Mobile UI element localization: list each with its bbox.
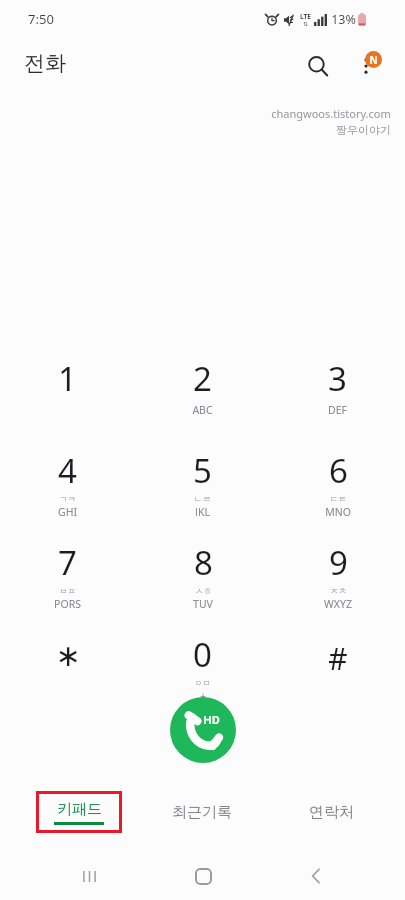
staticText: JKL — [195, 505, 210, 516]
button[interactable]: 연락처 — [286, 793, 376, 831]
staticText: ㄱㅋ — [59, 494, 76, 505]
staticText: ㄴㄹ — [194, 494, 211, 505]
staticText: 짱우이야기 — [336, 123, 391, 137]
button[interactable]: 0 — [135, 632, 270, 700]
button[interactable]: ∗ — [0, 632, 135, 700]
staticText: # — [328, 638, 348, 679]
button[interactable]: 4 — [0, 448, 135, 516]
staticText: HD — [203, 712, 220, 727]
staticText: ㄷㅌ — [330, 494, 347, 505]
staticText: 최근기록 — [172, 803, 232, 822]
staticText: 7 — [58, 540, 77, 585]
button[interactable]: Back — [292, 852, 340, 900]
staticText: LTE — [300, 12, 311, 21]
staticText: DEF — [328, 403, 347, 417]
staticText: 1 — [58, 356, 77, 401]
staticText: ABC — [192, 403, 213, 417]
button[interactable]: Call — [170, 697, 236, 763]
button[interactable]: Search — [296, 44, 340, 88]
button[interactable]: 6 — [270, 448, 405, 516]
staticText: 3 — [328, 356, 347, 401]
staticText: ㅅㅎ — [195, 586, 212, 597]
staticText: 키패드 — [57, 800, 102, 819]
button[interactable]: Recent apps — [65, 852, 113, 900]
staticText: 4 — [58, 448, 77, 493]
staticText: WXYZ — [324, 597, 352, 608]
staticText: 6 — [329, 448, 348, 493]
button[interactable]: 8 — [135, 540, 270, 608]
staticText: 전화 — [24, 50, 66, 76]
button[interactable]: 1 — [0, 356, 135, 424]
staticText: N — [369, 53, 378, 67]
staticText: MNO — [325, 505, 351, 516]
button[interactable]: More options — [344, 44, 388, 88]
staticText: + — [200, 689, 206, 700]
staticText: TUV — [193, 597, 213, 608]
button[interactable]: # — [270, 632, 405, 700]
staticText: 9 — [329, 540, 348, 585]
staticText: 0 — [193, 632, 212, 677]
button[interactable]: 9 — [270, 540, 405, 608]
staticText: 5 — [193, 448, 212, 493]
button[interactable]: 키패드 — [36, 791, 122, 833]
button[interactable]: 최근기록 — [152, 793, 252, 831]
staticText: ∗ — [55, 638, 81, 673]
button[interactable]: 5 — [135, 448, 270, 516]
staticText: 8 — [194, 540, 213, 585]
staticText: 7:50 — [28, 10, 54, 28]
staticText: 13% — [331, 11, 356, 28]
staticText: changwoos.tistory.com — [271, 106, 391, 121]
staticText: ⇅ — [303, 21, 308, 27]
button[interactable]: 3 — [270, 356, 405, 424]
staticText: ㅂㅍ — [59, 586, 76, 597]
staticText: 연락처 — [309, 803, 354, 822]
staticText: ㅇㅁ — [194, 678, 211, 689]
button[interactable]: 2 — [135, 356, 270, 424]
staticText: ㅈㅊ — [330, 586, 347, 597]
button[interactable]: Home — [179, 852, 227, 900]
staticText: 2 — [193, 356, 212, 401]
staticText: PQRS — [54, 597, 81, 608]
staticText: GHI — [58, 505, 77, 516]
button[interactable]: 7 — [0, 540, 135, 608]
